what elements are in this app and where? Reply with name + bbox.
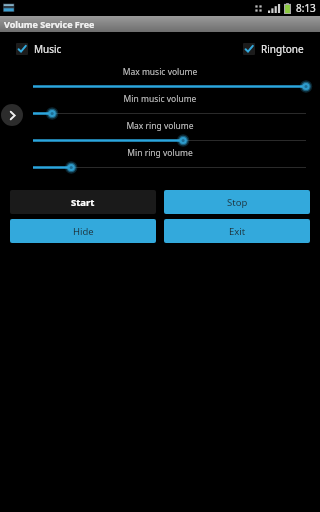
button[interactable]: Min ring volume [33, 161, 306, 174]
staticText: Stop [227, 196, 248, 209]
staticText: Min music volume [0, 93, 320, 105]
button[interactable]: Hide [10, 219, 156, 243]
staticText: Ringtone [261, 42, 304, 56]
staticText: Start [71, 196, 95, 209]
button[interactable]: Max music volume [33, 80, 306, 93]
button[interactable]: Expand panel [1, 104, 23, 126]
staticText: Volume Service Free [4, 18, 95, 30]
button[interactable]: Min music volume [33, 107, 306, 120]
staticText: Music [34, 42, 62, 56]
staticText: Min ring volume [0, 147, 320, 159]
button[interactable]: Start [10, 190, 156, 214]
staticText: Max ring volume [0, 120, 320, 132]
staticText: Hide [73, 225, 94, 238]
button[interactable]: Exit [164, 219, 310, 243]
staticText: 8:13 [296, 1, 316, 15]
staticText: Max music volume [0, 66, 320, 78]
button[interactable]: Stop [164, 190, 310, 214]
staticText: Exit [229, 225, 246, 238]
button[interactable]: Ringtone [241, 40, 306, 58]
button[interactable]: Music [14, 40, 64, 58]
button[interactable]: Max ring volume [33, 134, 306, 147]
